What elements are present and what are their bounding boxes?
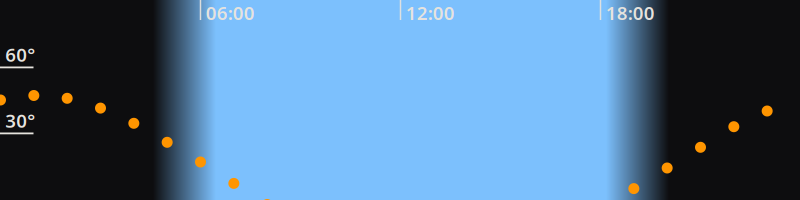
staticText: 30° xyxy=(5,108,35,133)
staticText: 12:00 xyxy=(406,0,455,25)
staticText: 60° xyxy=(5,42,35,67)
staticText: 18:00 xyxy=(606,0,655,25)
staticText: 06:00 xyxy=(206,0,255,25)
